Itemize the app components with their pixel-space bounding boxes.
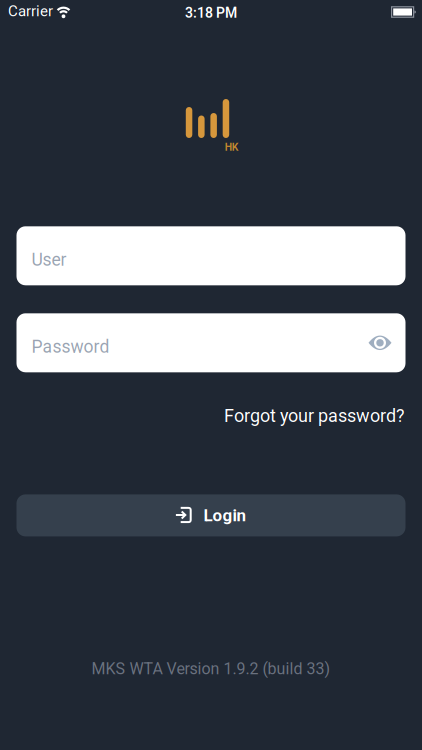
staticText: Forgot your password? xyxy=(224,405,405,426)
button[interactable]: Show password xyxy=(360,320,405,365)
staticText: MKS WTA Version 1.9.2 (build 33) xyxy=(91,659,330,678)
staticText: HK xyxy=(225,141,239,153)
staticText: User xyxy=(31,250,66,270)
staticText: Login xyxy=(203,505,246,525)
button[interactable]: Forgot your password? xyxy=(224,405,405,426)
button[interactable]: Login xyxy=(16,494,405,536)
staticText: Carrier xyxy=(8,2,53,20)
button[interactable]: Password xyxy=(16,313,405,372)
staticText: 3:18 PM xyxy=(185,5,237,21)
button[interactable]: User xyxy=(16,226,405,285)
staticText: Password xyxy=(31,337,109,357)
